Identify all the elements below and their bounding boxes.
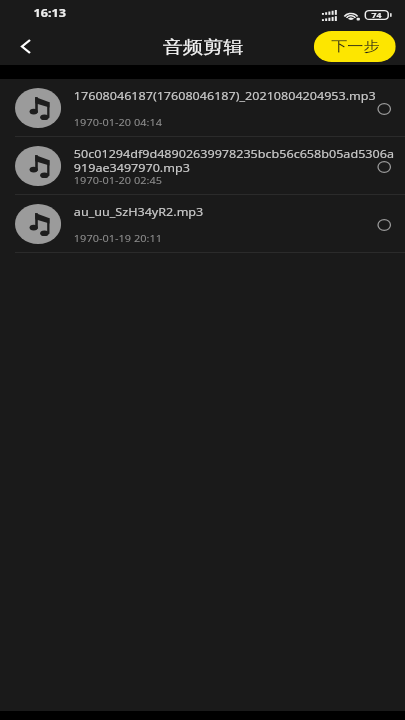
staticText: 1970-01-20 02:45 [74, 174, 163, 187]
button[interactable]: Back [0, 28, 46, 65]
button[interactable]: Select [366, 93, 403, 125]
button[interactable]: 50c01294df9d48902639978235bcb56c658b05ad… [0, 137, 405, 195]
button[interactable]: 17608046187(17608046187)_20210804204953.… [0, 79, 405, 137]
staticText: 下一步 [331, 38, 380, 56]
button[interactable]: Select [366, 209, 403, 241]
staticText: 音频剪辑 [163, 36, 243, 58]
button[interactable]: Select [366, 151, 403, 183]
staticText: 50c01294df9d48902639978235bcb56c658b05ad… [74, 146, 397, 175]
staticText: 1970-01-20 04:14 [74, 116, 163, 129]
staticText: 1970-01-19 20:11 [74, 232, 163, 245]
staticText: au_uu_SzH34yR2.mp3 [74, 204, 397, 219]
button[interactable]: au_uu_SzH34yR2.mp3 [0, 195, 405, 253]
button[interactable]: 下一步 [314, 31, 396, 62]
staticText: 17608046187(17608046187)_20210804204953.… [74, 88, 397, 103]
staticText: 74 [371, 10, 382, 20]
staticText: 16:13 [33, 5, 67, 20]
